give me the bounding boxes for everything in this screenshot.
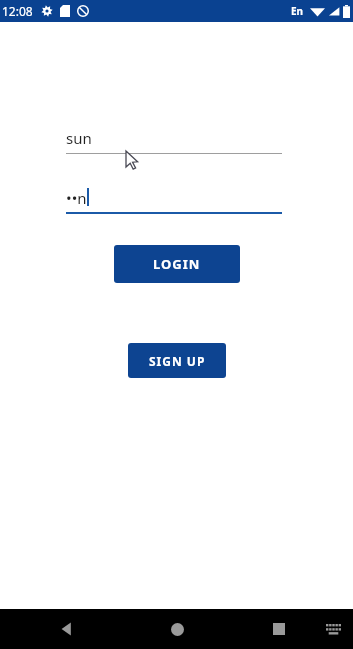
- staticText: En: [291, 4, 304, 18]
- button[interactable]: Switch keyboard: [316, 612, 350, 646]
- button[interactable]: LOGIN: [114, 245, 240, 283]
- button[interactable]: Back: [46, 609, 88, 649]
- button[interactable]: SIGN UP: [128, 343, 226, 378]
- staticText: ••n: [66, 188, 87, 208]
- staticText: sun: [66, 128, 92, 148]
- button[interactable]: ••n: [66, 182, 282, 214]
- button[interactable]: Home: [156, 609, 198, 649]
- button[interactable]: sun: [66, 122, 282, 154]
- staticText: LOGIN: [153, 255, 201, 273]
- staticText: 12:08: [2, 3, 33, 19]
- button[interactable]: Recent apps: [258, 609, 300, 649]
- staticText: SIGN UP: [149, 353, 206, 369]
